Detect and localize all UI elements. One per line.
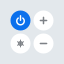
button[interactable]: Increase xyxy=(33,10,53,30)
button[interactable]: Power xyxy=(10,10,30,30)
button[interactable]: Cool xyxy=(10,33,30,53)
button[interactable]: Decrease xyxy=(33,33,53,53)
